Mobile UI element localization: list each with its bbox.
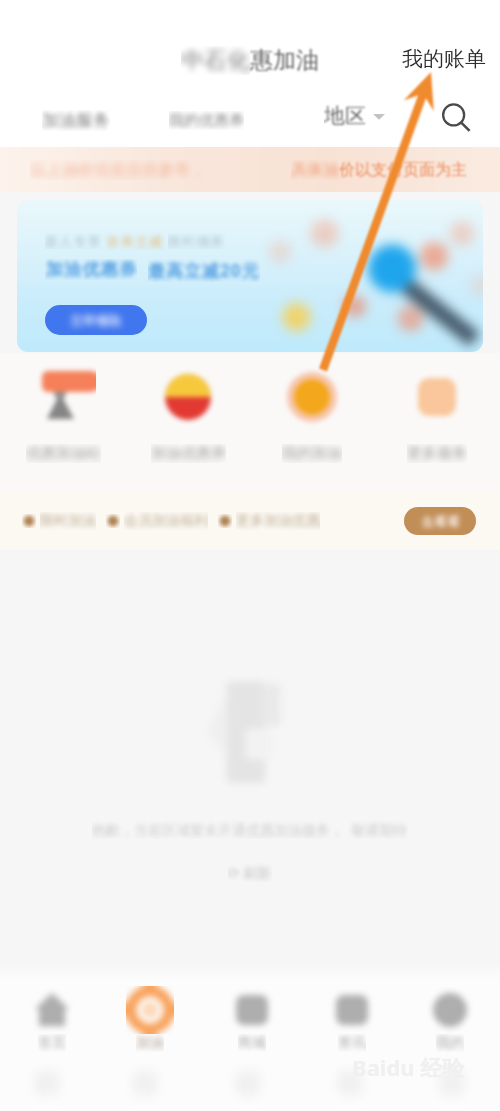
staticText: ⟳ 刷新: [228, 863, 272, 882]
button[interactable]: 我的账单: [399, 43, 489, 75]
staticText: 限时领券: [168, 233, 225, 249]
staticText: 限时加油: [40, 512, 96, 530]
button[interactable]: 刷新: [224, 859, 276, 886]
staticText: Baidu 经验: [352, 1052, 465, 1082]
button[interactable]: 以上油价信息仅供参考，: [0, 147, 500, 192]
button[interactable]: 加油服务: [30, 103, 122, 137]
staticText: 优惠加油站: [26, 444, 101, 463]
staticText: 地区: [324, 103, 366, 129]
staticText: 价以支付页面为主: [339, 160, 467, 180]
staticText: 资讯: [338, 1034, 366, 1052]
staticText: 加油优惠券: [151, 444, 226, 463]
button[interactable]: 去看看: [404, 507, 476, 535]
staticText: 首页: [38, 1034, 66, 1052]
staticText: 去看看: [421, 513, 460, 529]
button[interactable]: 限时加油: [0, 492, 500, 550]
button[interactable]: 新人专享: [17, 200, 483, 352]
staticText: 我的账单: [402, 46, 486, 72]
button[interactable]: 中石化: [179, 44, 321, 77]
button[interactable]: 资讯: [306, 984, 398, 1052]
staticText: 抱歉，当前区域暂未开通优惠加油服务， 敬请期待: [92, 820, 408, 839]
button[interactable]: 商城: [206, 984, 298, 1052]
button[interactable]: Search: [432, 94, 478, 140]
staticText: 首单立减: [102, 232, 168, 250]
button[interactable]: 服务入口: [11, 360, 115, 463]
staticText: 惠加油: [250, 46, 319, 75]
staticText: 加油: [136, 1034, 164, 1052]
staticText: 加油优惠券: [45, 259, 137, 280]
staticText: 最高立减20元: [148, 259, 260, 282]
staticText: 立即领取: [70, 312, 122, 328]
button[interactable]: 立即领取: [45, 305, 147, 335]
staticText: 我的: [436, 1034, 464, 1052]
staticText: 更多服务: [407, 444, 467, 463]
button[interactable]: 地区: [320, 99, 389, 133]
button[interactable]: 我的优惠券: [158, 103, 254, 137]
staticText: 以上油价信息仅供参考，: [30, 160, 206, 180]
button[interactable]: 服务入口: [136, 360, 240, 463]
button[interactable]: 服务入口: [260, 360, 364, 463]
button[interactable]: 服务入口: [385, 360, 489, 463]
staticText: 中石化: [181, 46, 250, 75]
staticText: 我的加油: [282, 444, 342, 463]
staticText: 我的优惠券: [169, 111, 244, 130]
button[interactable]: 首页: [6, 984, 98, 1052]
staticText: 具体油: [291, 160, 339, 180]
staticText: 更多加油优惠: [236, 512, 320, 530]
staticText: 新人专享: [45, 233, 102, 249]
staticText: 加油服务: [42, 110, 110, 131]
staticText: 会员加油福利: [124, 512, 208, 530]
button[interactable]: 加油: [104, 984, 196, 1052]
button[interactable]: 我的: [404, 984, 496, 1052]
staticText: 商城: [238, 1034, 266, 1052]
